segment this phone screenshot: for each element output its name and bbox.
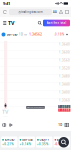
- staticText: 1.3400: [59, 91, 70, 94]
- staticText: Start free trial: [46, 21, 66, 25]
- button[interactable]: Tabs: [64, 7, 70, 16]
- staticText: -0.07%: [54, 142, 64, 146]
- staticText: GBPUSD: [6, 33, 17, 36]
- staticText: 1.3400: [2, 115, 7, 117]
- button[interactable]: GBPUSD: [19, 136, 35, 147]
- staticText: 1D: [58, 123, 62, 127]
- staticText: 1.3360: [59, 99, 70, 102]
- staticText: 1.3600: [59, 51, 70, 54]
- staticText: TV: [8, 19, 14, 27]
- button[interactable]: USDJPY: [36, 136, 52, 147]
- button[interactable]: TV: [8, 17, 14, 29]
- button[interactable]: Search symbol: [58, 137, 69, 147]
- button[interactable]: Menu: [1, 17, 8, 29]
- button[interactable]: tradingview.com: [9, 9, 52, 15]
- button[interactable]: Share: [58, 7, 64, 16]
- staticText: 1.34562: [29, 33, 42, 36]
- button[interactable]: EURUSD: [1, 136, 17, 147]
- staticText: 1.3480: [59, 75, 70, 78]
- staticText: +0.14%: [20, 142, 31, 146]
- button[interactable]: Chart style: [1, 119, 7, 131]
- button[interactable]: Reload: [1, 7, 9, 16]
- staticText: tradingview.com: [21, 10, 42, 14]
- button[interactable]: More: [64, 29, 70, 40]
- staticText: GBPUSD: [22, 138, 33, 142]
- button[interactable]: Search: [36, 17, 43, 29]
- staticText: 1.3412: [59, 105, 70, 108]
- button[interactable]: 1D: [57, 119, 63, 131]
- staticText: 1.3398: [59, 108, 70, 112]
- staticText: FX: [24, 33, 27, 36]
- button[interactable]: Start free trial: [43, 20, 70, 26]
- staticText: 1.3640: [59, 43, 70, 46]
- staticText: +0.21%: [2, 142, 13, 146]
- button[interactable]: GBPUSD: [1, 32, 17, 36]
- staticText: AA: [53, 10, 57, 14]
- staticText: USDJPY: [39, 138, 49, 142]
- button[interactable]: Bar replay: [7, 119, 14, 131]
- staticText: 9:41: [3, 1, 10, 6]
- staticText: 1D: [19, 33, 23, 36]
- staticText: 1.3440: [59, 83, 70, 86]
- staticText: 1.3560: [59, 59, 70, 62]
- staticText: GBPUSD 1.34562 -0.0024: [27, 106, 44, 108]
- staticText: -0.18%: [54, 33, 64, 36]
- staticText: TV: [2, 108, 8, 115]
- staticText: AUDUSD: [57, 138, 68, 142]
- button[interactable]: Page settings: [52, 7, 58, 16]
- staticText: EURUSD: [4, 138, 14, 142]
- staticText: 1.3520: [59, 67, 70, 70]
- button[interactable]: AUDUSD: [53, 136, 70, 147]
- staticText: +0.35%: [37, 142, 48, 146]
- button[interactable]: Layout: [63, 119, 70, 131]
